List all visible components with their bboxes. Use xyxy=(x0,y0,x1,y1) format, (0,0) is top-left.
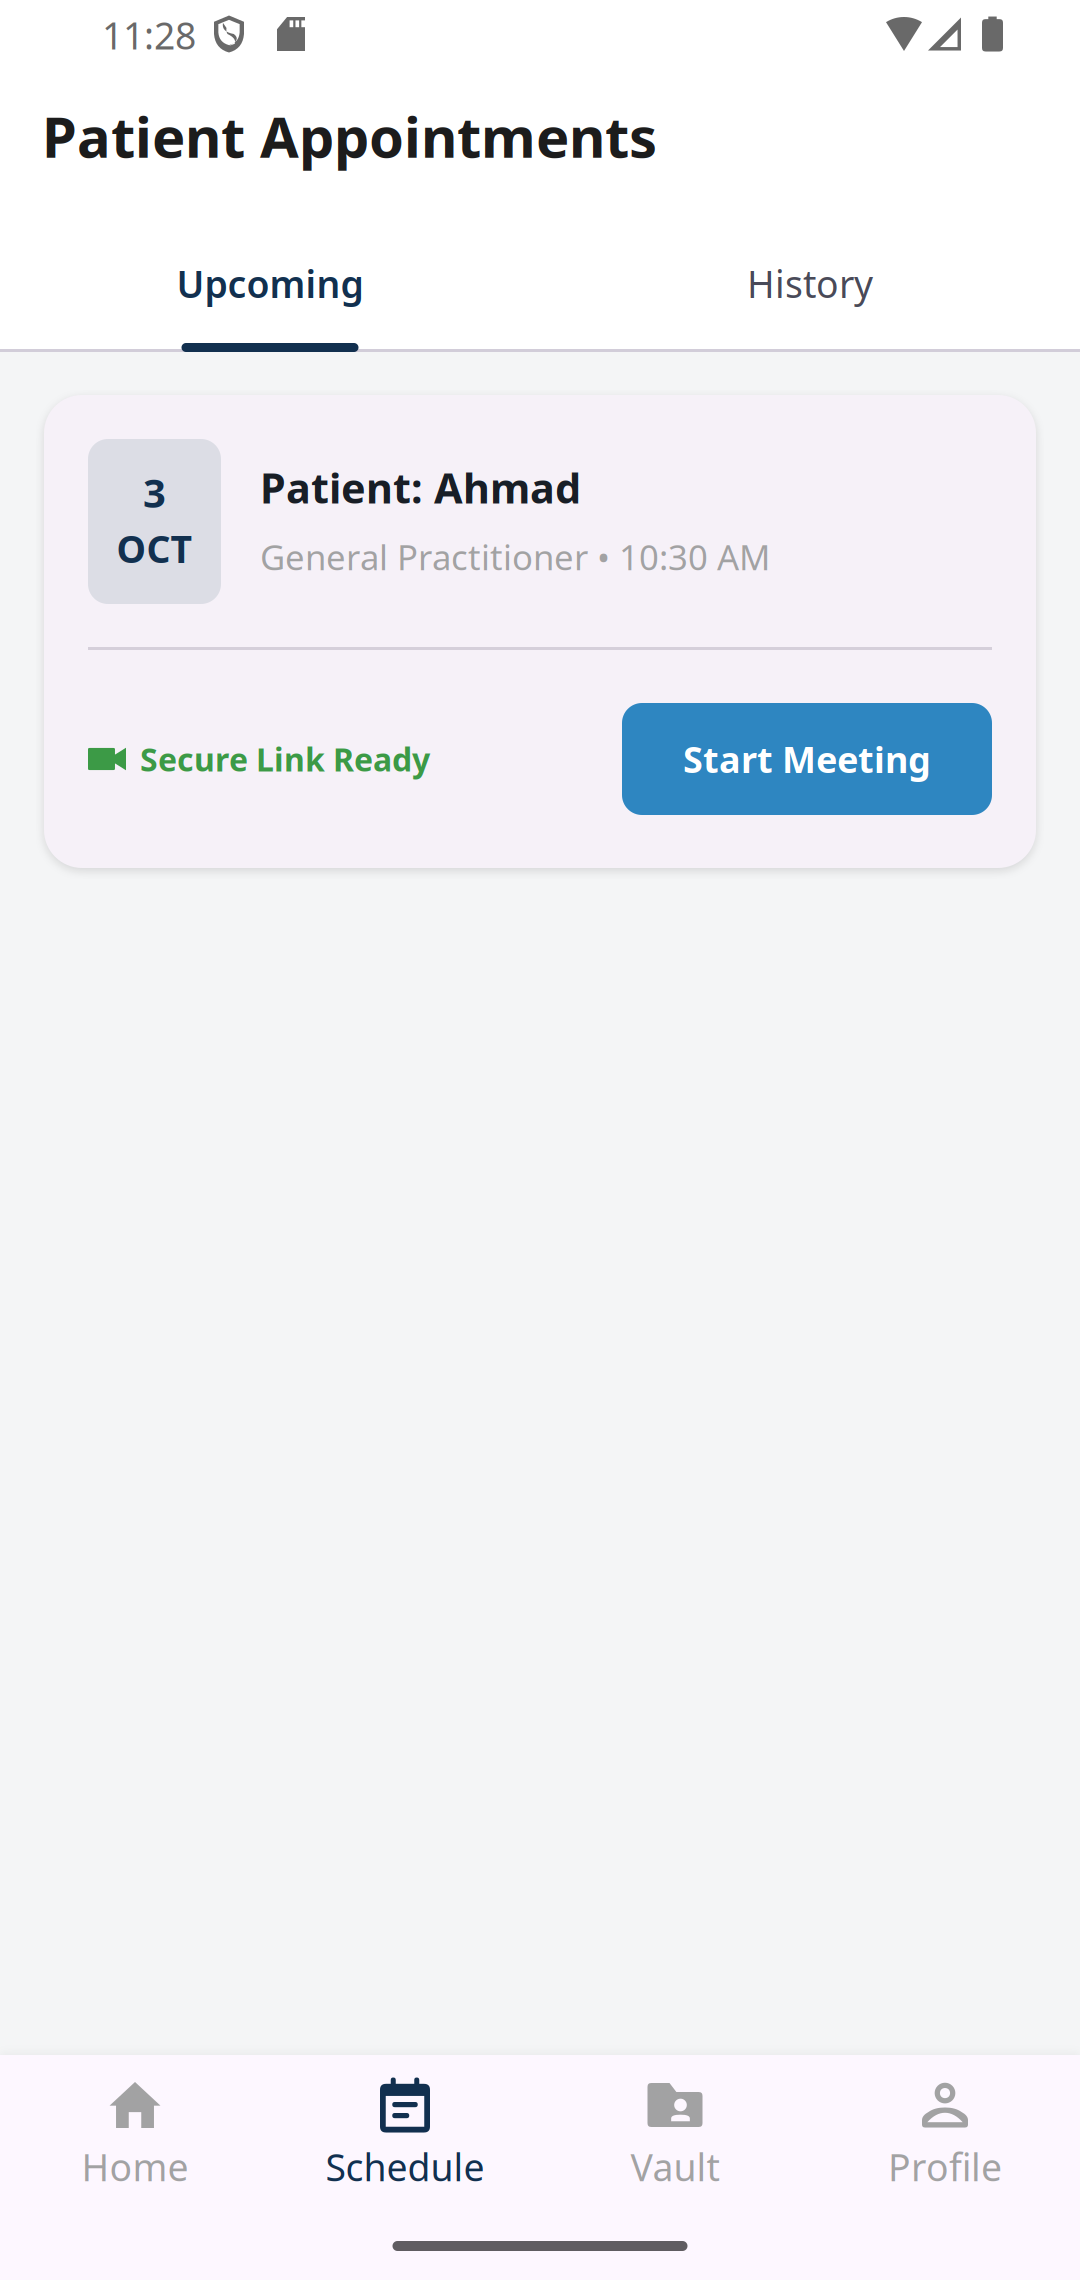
staticText: Home xyxy=(81,2142,188,2192)
button[interactable]: 3 xyxy=(44,395,1036,868)
staticText: Schedule xyxy=(325,2142,484,2192)
button[interactable]: Vault xyxy=(540,2077,810,2207)
button[interactable]: Start Meeting xyxy=(622,703,992,815)
staticText: Patient: Ahmad xyxy=(260,460,581,515)
staticText: Start Meeting xyxy=(683,735,931,783)
staticText: Patient Appointments xyxy=(42,99,657,173)
button[interactable]: Home xyxy=(0,2077,270,2207)
staticText: Vault xyxy=(630,2142,719,2192)
staticText: General Practitioner • 10:30 AM xyxy=(260,534,770,580)
staticText: Upcoming xyxy=(176,259,363,308)
staticText: Profile xyxy=(888,2142,1002,2192)
staticText: OCT xyxy=(116,524,192,573)
button[interactable]: History xyxy=(540,224,1080,352)
staticText: 11:28 xyxy=(102,10,196,60)
staticText: History xyxy=(747,259,873,308)
button[interactable]: Upcoming xyxy=(0,224,540,352)
staticText: Secure Link Ready xyxy=(140,738,430,780)
staticText: 3 xyxy=(143,466,166,519)
button[interactable]: Profile xyxy=(810,2077,1080,2207)
button[interactable]: Schedule xyxy=(270,2077,540,2207)
